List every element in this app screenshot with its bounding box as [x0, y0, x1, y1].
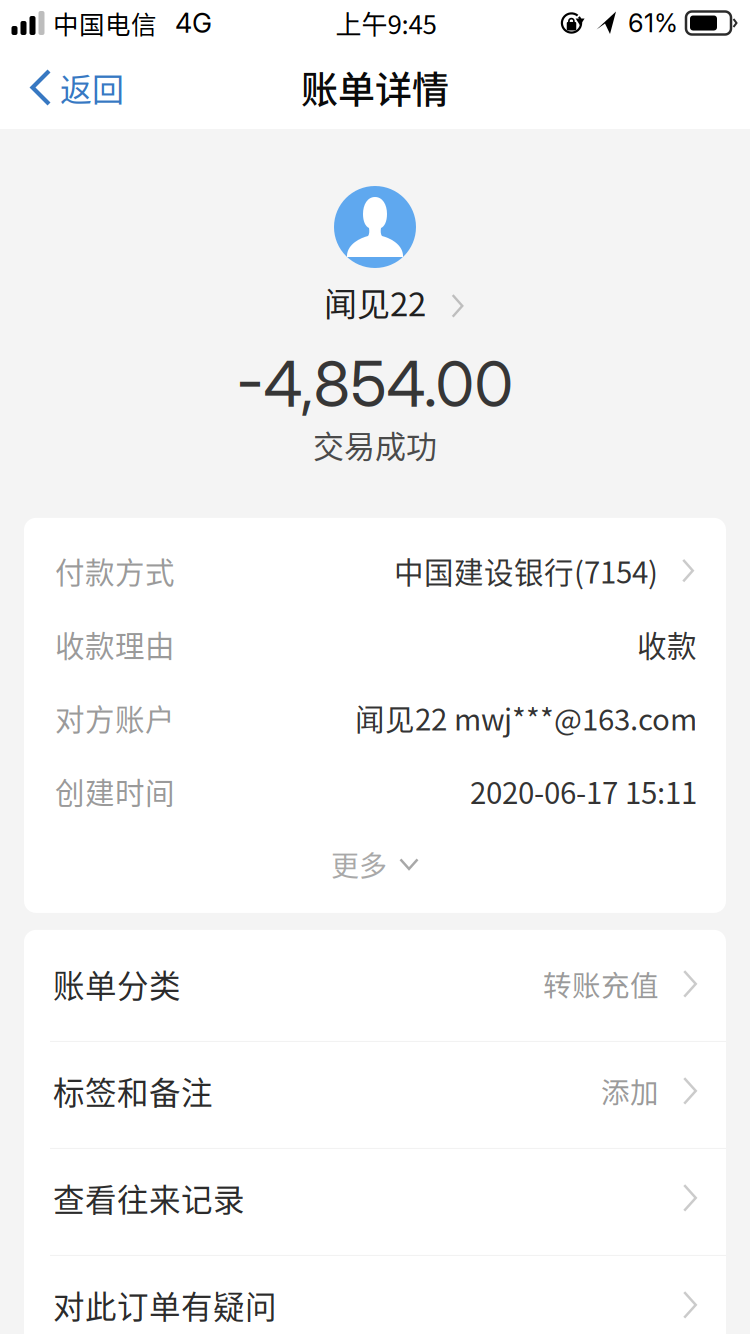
staticText: 对方账户: [55, 696, 175, 739]
staticText: -4,854.00: [236, 346, 513, 422]
staticText: 闻见22 mwj***@163.com: [355, 696, 697, 739]
staticText: 上午9:45: [335, 4, 436, 42]
button[interactable]: 账单分类: [24, 935, 726, 1041]
staticText: 查看往来记录: [53, 1175, 245, 1221]
button[interactable]: 标签和备注: [24, 1042, 726, 1148]
staticText: 更多: [331, 844, 387, 885]
staticText: 61%: [628, 8, 678, 38]
staticText: 2020-06-17 15:11: [470, 770, 697, 812]
staticText: 添加: [601, 1070, 659, 1112]
button[interactable]: 更多: [24, 828, 726, 913]
button[interactable]: 闻见22: [286, 276, 463, 328]
staticText: 对此订单有疑问: [53, 1282, 277, 1328]
staticText: 创建时间: [55, 770, 175, 812]
staticText: 闻见22: [324, 278, 426, 326]
button[interactable]: 付款方式: [24, 534, 726, 607]
staticText: 账单详情: [301, 61, 449, 114]
staticText: 返回: [60, 64, 124, 111]
staticText: 账单分类: [53, 961, 181, 1007]
staticText: 付款方式: [55, 549, 175, 592]
staticText: 交易成功: [313, 422, 437, 467]
staticText: 标签和备注: [53, 1068, 213, 1114]
staticText: 收款: [637, 623, 697, 665]
staticText: 4G: [175, 7, 212, 39]
button[interactable]: 对此订单有疑问: [24, 1256, 726, 1334]
staticText: 收款理由: [55, 623, 175, 665]
button[interactable]: 返回: [0, 46, 148, 129]
button[interactable]: 查看往来记录: [24, 1149, 726, 1255]
staticText: 中国建设银行(7154): [394, 549, 658, 592]
staticText: 转账充值: [543, 963, 659, 1005]
staticText: 中国电信: [53, 4, 157, 41]
